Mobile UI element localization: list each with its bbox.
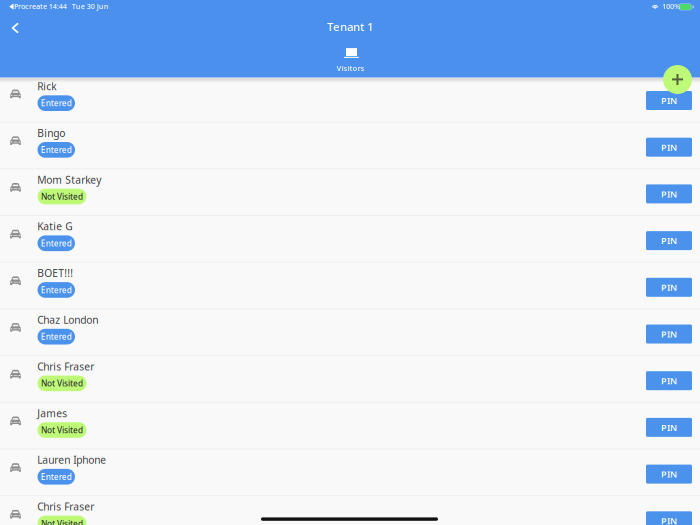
button[interactable]: PIN xyxy=(646,465,692,484)
staticText: PIN xyxy=(661,234,677,247)
staticText: James xyxy=(37,406,67,420)
staticText: Procreate xyxy=(14,1,47,11)
staticText: PIN xyxy=(661,328,677,340)
button[interactable]: Back xyxy=(1,16,29,40)
button[interactable]: PIN xyxy=(646,278,692,297)
staticText: Entered xyxy=(41,284,72,296)
staticText: PIN xyxy=(661,94,677,107)
staticText: Chris Fraser xyxy=(37,359,94,373)
staticText: Rick xyxy=(37,79,56,93)
staticText: Not Visited xyxy=(41,191,83,202)
button[interactable]: Add visitor xyxy=(661,63,694,96)
staticText: Lauren Iphone xyxy=(37,453,106,467)
staticText: Entered xyxy=(41,97,72,109)
button[interactable]: PIN xyxy=(646,231,692,250)
staticText: PIN xyxy=(661,515,677,525)
staticText: Katie G xyxy=(37,219,72,233)
button[interactable]: PIN xyxy=(646,418,692,437)
staticText: Not Visited xyxy=(41,518,83,525)
staticText: Entered xyxy=(41,144,72,155)
button[interactable]: PIN xyxy=(646,184,692,203)
staticText: PIN xyxy=(661,374,677,387)
staticText: PIN xyxy=(661,281,677,293)
staticText: Mom Starkey xyxy=(37,173,101,187)
staticText: Tenant 1 xyxy=(327,19,373,34)
staticText: Not Visited xyxy=(41,378,83,389)
button[interactable]: PIN xyxy=(646,324,692,343)
staticText: PIN xyxy=(661,141,677,153)
button[interactable]: PIN xyxy=(646,138,692,157)
staticText: 100% xyxy=(662,1,680,11)
staticText: Not Visited xyxy=(41,424,83,436)
button[interactable]: PIN xyxy=(646,91,692,110)
staticText: Tue 30 Jun xyxy=(72,1,109,11)
staticText: Bingo xyxy=(37,126,65,140)
button[interactable]: Visitors xyxy=(315,46,385,72)
staticText: BOET!!! xyxy=(37,266,73,280)
staticText: Entered xyxy=(41,471,72,482)
staticText: PIN xyxy=(661,188,677,200)
staticText: 14:44 xyxy=(49,1,67,11)
staticText: Visitors xyxy=(336,63,364,73)
button[interactable]: PIN xyxy=(646,371,692,390)
staticText: Chaz London xyxy=(37,313,98,327)
staticText: Chris Fraser xyxy=(37,500,94,514)
staticText: PIN xyxy=(661,421,677,433)
staticText: PIN xyxy=(661,468,677,480)
button[interactable]: PIN xyxy=(646,511,692,525)
staticText: Entered xyxy=(41,331,72,342)
staticText: Entered xyxy=(41,238,72,249)
